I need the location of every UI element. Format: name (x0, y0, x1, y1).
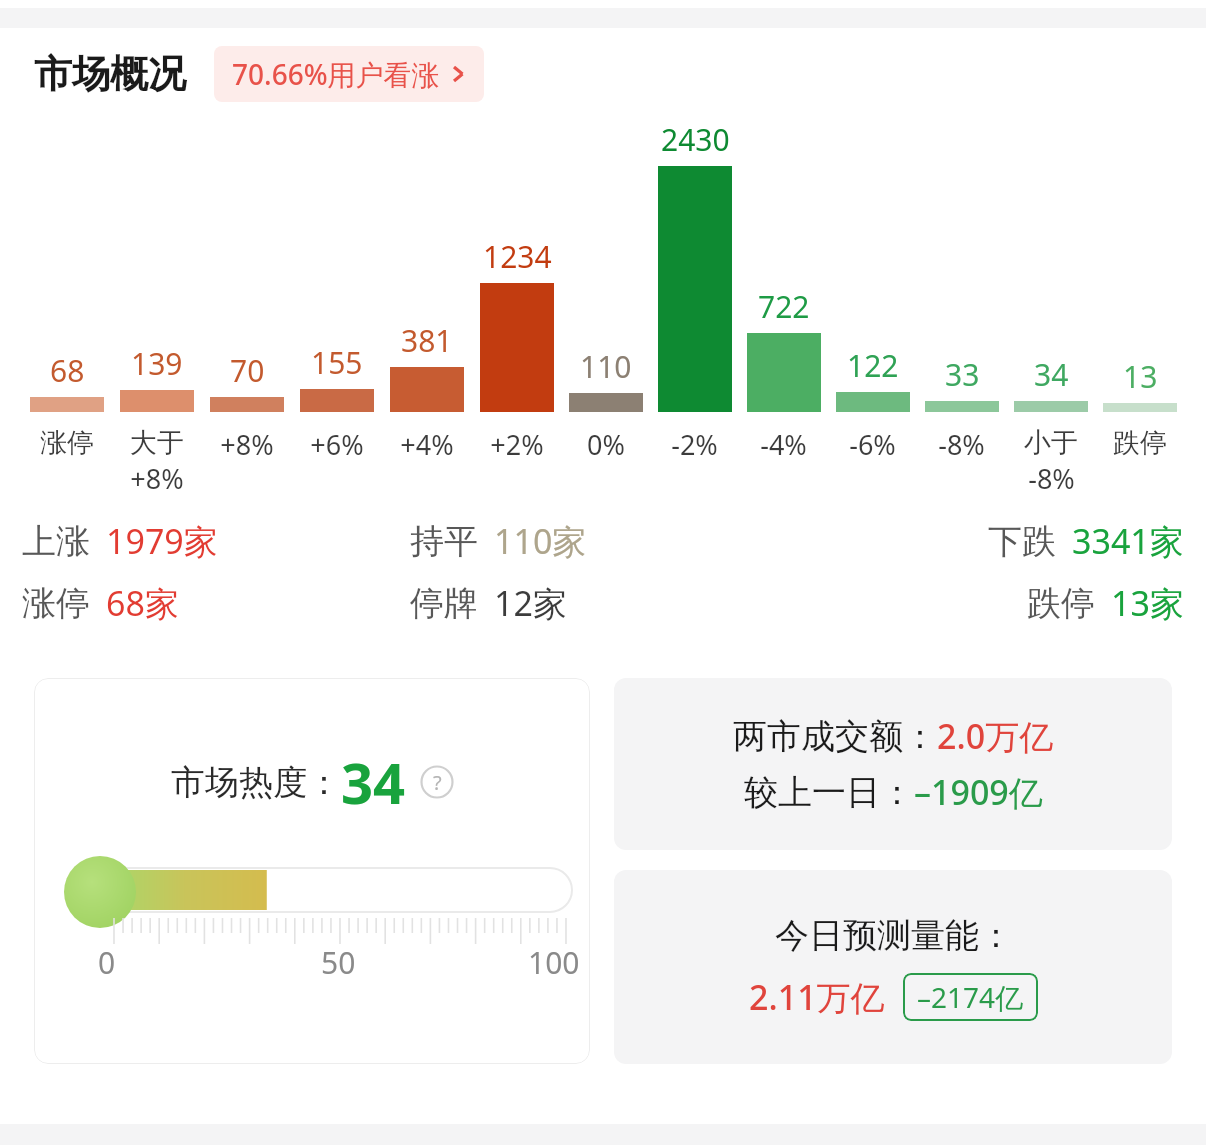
staticText: 70.66%用户看涨 (232, 55, 440, 93)
staticText: 3341家 (1072, 518, 1184, 564)
staticText: -2% (671, 426, 718, 463)
staticText: 722 (758, 286, 810, 327)
staticText: 155 (311, 342, 363, 383)
staticText: 2430 (661, 119, 730, 160)
button[interactable]: 今日预测量能： (614, 870, 1172, 1064)
staticText: 68家 (106, 580, 179, 626)
staticText: +8% (220, 426, 274, 463)
staticText: ? (433, 769, 442, 796)
staticText: +4% (400, 426, 454, 463)
staticText: 两市成交额： (733, 715, 937, 758)
staticText: 139 (131, 343, 183, 384)
staticText: 涨停 (40, 426, 94, 460)
staticText: -8% (938, 426, 985, 463)
button[interactable]: 70.66%用户看涨 (214, 46, 484, 102)
staticText: 0 (98, 942, 116, 983)
staticText: -4% (760, 426, 807, 463)
button[interactable]: 两市成交额： (614, 678, 1172, 850)
staticText: +6% (310, 426, 364, 463)
staticText: 市场热度： (171, 761, 341, 804)
staticText: 0% (587, 426, 625, 463)
staticText: 涨停 (22, 582, 90, 625)
staticText: 12家 (494, 580, 567, 626)
staticText: 70 (230, 350, 265, 391)
staticText: 跌停 (1113, 426, 1167, 460)
staticText: 68 (50, 350, 85, 391)
staticText: 34 (1034, 354, 1069, 395)
staticText: 50 (321, 942, 356, 983)
staticText: 100 (528, 942, 580, 983)
button[interactable]: 市场热度： (34, 678, 590, 1064)
staticText: 大于 (130, 426, 184, 460)
staticText: 1234 (483, 236, 552, 277)
staticText: 小于 (1024, 426, 1078, 460)
staticText: 381 (401, 320, 453, 361)
staticText: 122 (847, 345, 899, 386)
staticText: 上涨 (22, 520, 90, 563)
staticText: -6% (849, 426, 896, 463)
staticText: 跌停 (1027, 582, 1095, 625)
staticText: –2174亿 (917, 978, 1024, 1016)
staticText: 今日预测量能： (775, 914, 1013, 957)
staticText: -8% (1028, 460, 1075, 497)
staticText: 停牌 (410, 582, 478, 625)
staticText: 110家 (494, 518, 587, 564)
staticText: 2.11万亿 (749, 974, 885, 1020)
staticText: 34 (341, 744, 406, 820)
staticText: –1909亿 (914, 769, 1043, 815)
staticText: +2% (490, 426, 544, 463)
staticText: 110 (580, 346, 632, 387)
staticText: +8% (130, 460, 184, 497)
staticText: 1979家 (106, 518, 218, 564)
staticText: 市场概况 (34, 50, 186, 98)
staticText: 33 (945, 354, 980, 395)
staticText: 持平 (410, 520, 478, 563)
staticText: 13 (1123, 356, 1158, 397)
button[interactable]: 帮助 (420, 765, 454, 799)
staticText: 下跌 (988, 520, 1056, 563)
staticText: 2.0万亿 (937, 713, 1054, 759)
staticText: 13家 (1111, 580, 1184, 626)
staticText: 较上一日： (744, 771, 914, 814)
